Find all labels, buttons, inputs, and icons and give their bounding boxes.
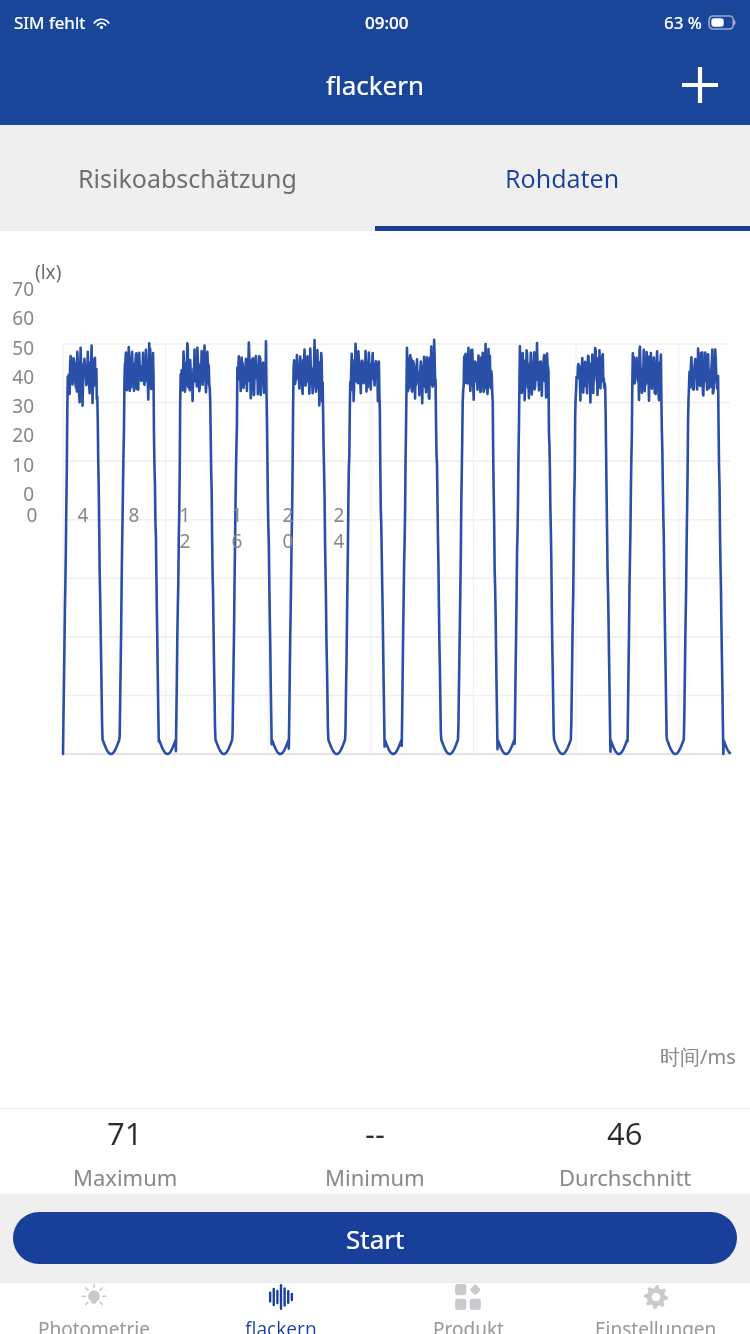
staticText: 46 [607,1112,643,1154]
staticText: 70 [12,276,34,302]
button[interactable]: Einstellungen [562,1283,750,1334]
staticText: 09:00 [365,11,409,34]
staticText: SIM fehlt [14,11,86,34]
button[interactable]: Start [13,1212,737,1264]
staticText: 4 [73,502,93,528]
staticText: -- [365,1112,385,1154]
staticText: 24 [329,502,349,554]
staticText: 16 [227,502,247,554]
staticText: Maximum [73,1162,178,1192]
staticText: 8 [124,502,144,528]
staticText: 0 [22,502,42,528]
staticText: Produkt [433,1316,504,1334]
staticText: 50 [12,335,34,361]
staticText: Risikoabschätzung [78,161,297,195]
staticText: Start [346,1221,405,1256]
button[interactable]: Produkt [374,1283,562,1334]
staticText: flackern [245,1316,317,1334]
staticText: flackern [326,67,425,102]
staticText: 0 [12,481,34,507]
staticText: Einstellungen [595,1316,717,1334]
staticText: 30 [12,393,34,419]
staticText: 71 [107,1112,143,1154]
staticText: 12 [175,502,195,554]
staticText: Rohdaten [505,161,620,195]
button[interactable]: flackern [187,1283,374,1334]
staticText: 40 [12,364,34,390]
staticText: 20 [278,502,298,554]
staticText: 10 [12,452,34,478]
button[interactable]: Photometrie [0,1283,187,1334]
staticText: Photometrie [38,1316,150,1334]
staticText: Durchschnitt [559,1162,692,1192]
button[interactable]: Risikoabschätzung [0,125,375,231]
button[interactable]: Rohdaten [375,125,750,231]
staticText: 63 % [664,11,702,34]
staticText: (lx) [35,259,62,285]
button[interactable]: Hinzufügen [674,59,726,111]
staticText: 60 [12,305,34,331]
staticText: 20 [12,422,34,448]
staticText: Minimum [325,1162,425,1192]
staticText: 时间/ms [660,1043,736,1070]
